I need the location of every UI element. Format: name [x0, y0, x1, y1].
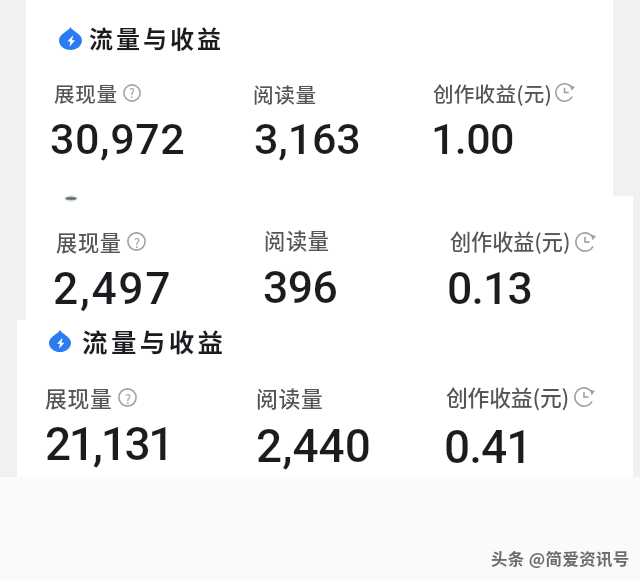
staticText: 396 — [263, 262, 338, 314]
button[interactable]: Help — [127, 232, 146, 251]
button[interactable]: Help — [123, 84, 141, 102]
staticText: 2,440 — [256, 419, 371, 473]
staticText: 3,163 — [254, 114, 361, 164]
staticText: ? — [134, 233, 140, 251]
staticText: 创作收益(元) — [433, 78, 553, 108]
staticText: 0.41 — [444, 420, 532, 474]
staticText: 创作收益(元) — [446, 381, 570, 413]
button[interactable]: History — [575, 232, 595, 252]
button[interactable]: History — [555, 83, 574, 102]
staticText: 1.00 — [431, 114, 514, 164]
staticText: 0.13 — [447, 263, 533, 315]
staticText: 展现量 — [56, 226, 122, 257]
staticText: 展现量 — [54, 78, 118, 108]
button[interactable]: History — [574, 387, 594, 407]
staticText: 阅读量 — [264, 224, 330, 255]
staticText: 阅读量 — [256, 382, 324, 414]
staticText: 流量与收益 — [89, 20, 224, 55]
staticText: 阅读量 — [253, 79, 317, 109]
staticText: 头条 @简爱资讯号 — [491, 546, 630, 570]
staticText: 21,131 — [45, 417, 173, 471]
button[interactable]: Help — [118, 388, 137, 407]
staticText: ? — [125, 389, 131, 407]
button[interactable]: Traffic and revenue — [59, 27, 82, 50]
staticText: 流量与收益 — [82, 322, 227, 359]
button[interactable]: Traffic and revenue — [49, 330, 71, 352]
staticText: 创作收益(元) — [450, 225, 571, 256]
staticText: 2,497 — [53, 263, 173, 315]
staticText: 展现量 — [45, 382, 113, 414]
staticText: 30,972 — [50, 114, 186, 164]
staticText: ? — [129, 84, 135, 102]
